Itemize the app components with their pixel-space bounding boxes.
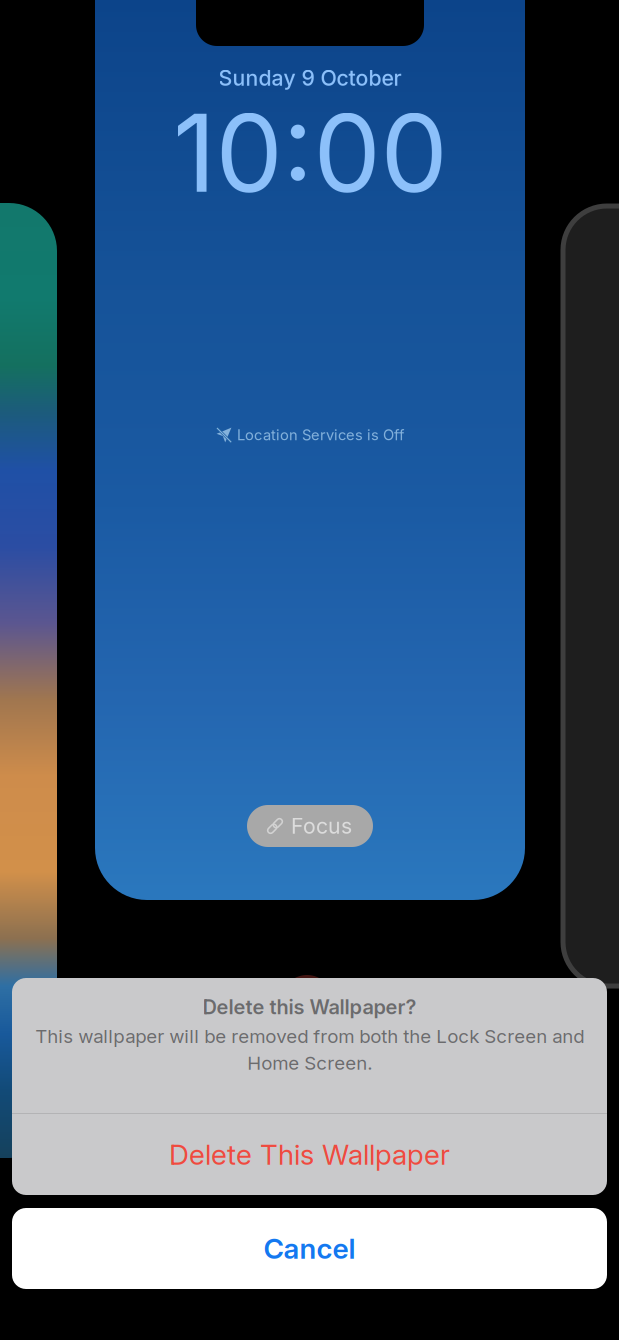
button[interactable]: Delete This Wallpaper [12, 1114, 607, 1195]
button[interactable]: Cancel [12, 1208, 607, 1289]
staticText: 10:00 [172, 88, 447, 218]
staticText: Focus [291, 813, 352, 839]
button[interactable]: Previous wallpaper [0, 203, 57, 1158]
button[interactable]: Focus [247, 805, 373, 847]
staticText: Sunday 9 October [218, 65, 401, 91]
staticText: Delete This Wallpaper [169, 1138, 450, 1171]
staticText: This wallpaper will be removed from both… [35, 1025, 584, 1074]
button[interactable]: Add new wallpaper [563, 206, 619, 986]
staticText: Location Services is Off [237, 426, 404, 444]
button[interactable]: Delete wallpaper [281, 975, 333, 1027]
staticText: Delete this Wallpaper? [202, 995, 416, 1019]
button[interactable]: Lock screen wallpaper preview [95, 0, 525, 900]
staticText: Cancel [263, 1232, 355, 1265]
